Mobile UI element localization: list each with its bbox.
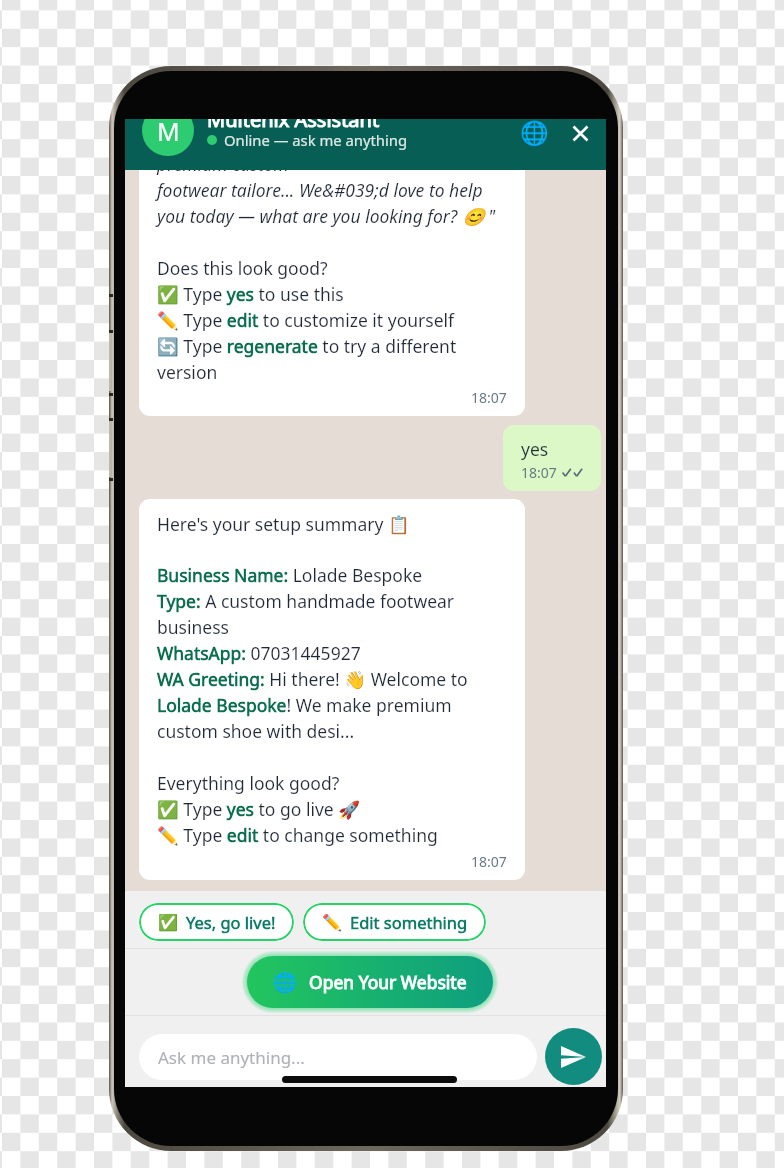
- button[interactable]: Open website: [517, 119, 551, 150]
- staticText: 🌐: [520, 120, 549, 147]
- staticText: Multenix Assistant: [207, 119, 380, 133]
- button[interactable]: Ask me anything...: [139, 1034, 537, 1080]
- button[interactable]: 🌐: [247, 956, 493, 1008]
- staticText: "Hi! Welcome to Lolade Bespoke, your pre…: [157, 170, 507, 384]
- staticText: ✅: [158, 913, 178, 932]
- staticText: 🌐: [273, 971, 297, 993]
- button[interactable]: ✏️: [303, 903, 486, 941]
- staticText: Ask me anything...: [158, 1046, 305, 1069]
- staticText: ✏️: [322, 913, 342, 932]
- staticText: Yes, go live!: [186, 911, 276, 933]
- staticText: 18:07: [521, 463, 557, 482]
- staticText: 18:07: [471, 852, 507, 871]
- staticText: Open Your Website: [309, 970, 467, 994]
- button[interactable]: Send: [545, 1028, 602, 1085]
- staticText: Here's your setup summary 📋 Business Nam…: [157, 512, 468, 848]
- staticText: M: [157, 119, 180, 148]
- button[interactable]: Close: [563, 119, 597, 150]
- staticText: Edit something: [350, 911, 468, 933]
- staticText: 18:07: [471, 388, 507, 407]
- staticText: Online — ask me anything: [224, 130, 408, 150]
- staticText: yes: [521, 437, 549, 461]
- button[interactable]: ✅: [139, 903, 294, 941]
